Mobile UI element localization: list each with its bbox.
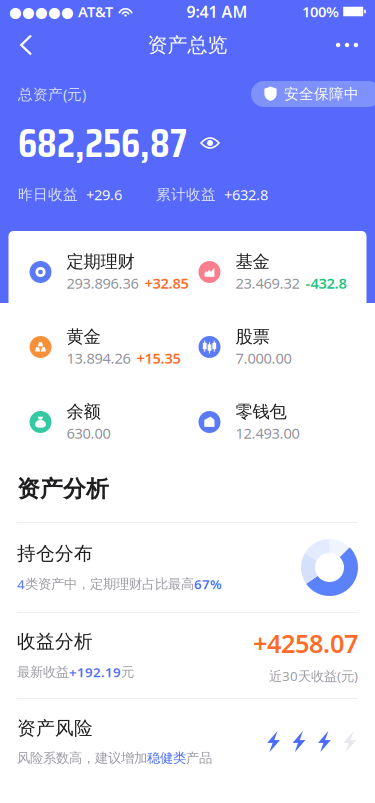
staticText: 7.000.00 <box>235 348 291 368</box>
staticText: 最新收益 <box>17 664 69 680</box>
staticText: 收益分析 <box>17 630 93 653</box>
staticText: 4 <box>17 575 25 593</box>
button[interactable]: 安全保障中 <box>251 81 375 107</box>
staticText: 67% <box>194 575 222 593</box>
staticText: 类资产中，定期理财占比最高 <box>25 576 194 592</box>
staticText: 稳健类 <box>147 750 186 766</box>
staticText: ●●●●● AT&T <box>9 2 113 21</box>
staticText: 黄金 <box>66 326 100 347</box>
staticText: 近30天收益(元) <box>269 667 358 685</box>
staticText: 持仓分布 <box>17 542 93 565</box>
staticText: 293.896.36 <box>66 273 138 293</box>
button[interactable]: 余额 <box>18 381 187 456</box>
button[interactable]: Back <box>0 23 46 67</box>
staticText: 682,256,87 <box>18 111 187 174</box>
staticText: -432.8 <box>305 273 346 293</box>
staticText: 余额 <box>66 401 100 422</box>
staticText: 累计收益 <box>156 185 216 203</box>
button[interactable]: More <box>319 23 375 67</box>
staticText: +192.19 <box>69 663 121 681</box>
staticText: 13.894.26 <box>66 348 130 368</box>
button[interactable]: 定期理财 <box>18 231 187 306</box>
staticText: 产品 <box>186 750 212 766</box>
button[interactable]: 基金 <box>187 231 356 306</box>
staticText: 零钱包 <box>235 401 286 422</box>
staticText: 基金 <box>235 251 269 272</box>
staticText: 元 <box>121 664 134 680</box>
staticText: 100% <box>302 2 339 21</box>
staticText: 资产风险 <box>17 717 93 740</box>
staticText: 昨日收益 <box>18 185 78 203</box>
button[interactable]: 收益分析 <box>0 613 375 698</box>
staticText: 股票 <box>235 326 269 347</box>
button[interactable]: 资产风险 <box>0 699 375 784</box>
button[interactable]: 零钱包 <box>187 381 356 456</box>
button[interactable]: 黄金 <box>18 306 187 381</box>
staticText: 12.493.00 <box>235 423 299 443</box>
staticText: 总资产(元) <box>18 84 86 104</box>
staticText: 9:41 AM <box>186 1 247 22</box>
staticText: 安全保障中 <box>284 85 359 103</box>
staticText: 定期理财 <box>66 251 134 272</box>
staticText: 23.469.32 <box>235 273 299 293</box>
staticText: +29.6 <box>78 185 122 204</box>
staticText: 资产分析 <box>17 475 109 503</box>
staticText: +15.35 <box>136 348 180 368</box>
staticText: +4258.07 <box>253 626 358 660</box>
staticText: +32.85 <box>144 273 188 293</box>
staticText: 630.00 <box>66 423 110 443</box>
staticText: 资产总览 <box>147 33 227 57</box>
staticText: +632.8 <box>216 185 268 204</box>
button[interactable]: 股票 <box>187 306 356 381</box>
button[interactable]: 持仓分布 <box>0 523 375 612</box>
staticText: 风险系数高，建议增加 <box>17 750 147 766</box>
